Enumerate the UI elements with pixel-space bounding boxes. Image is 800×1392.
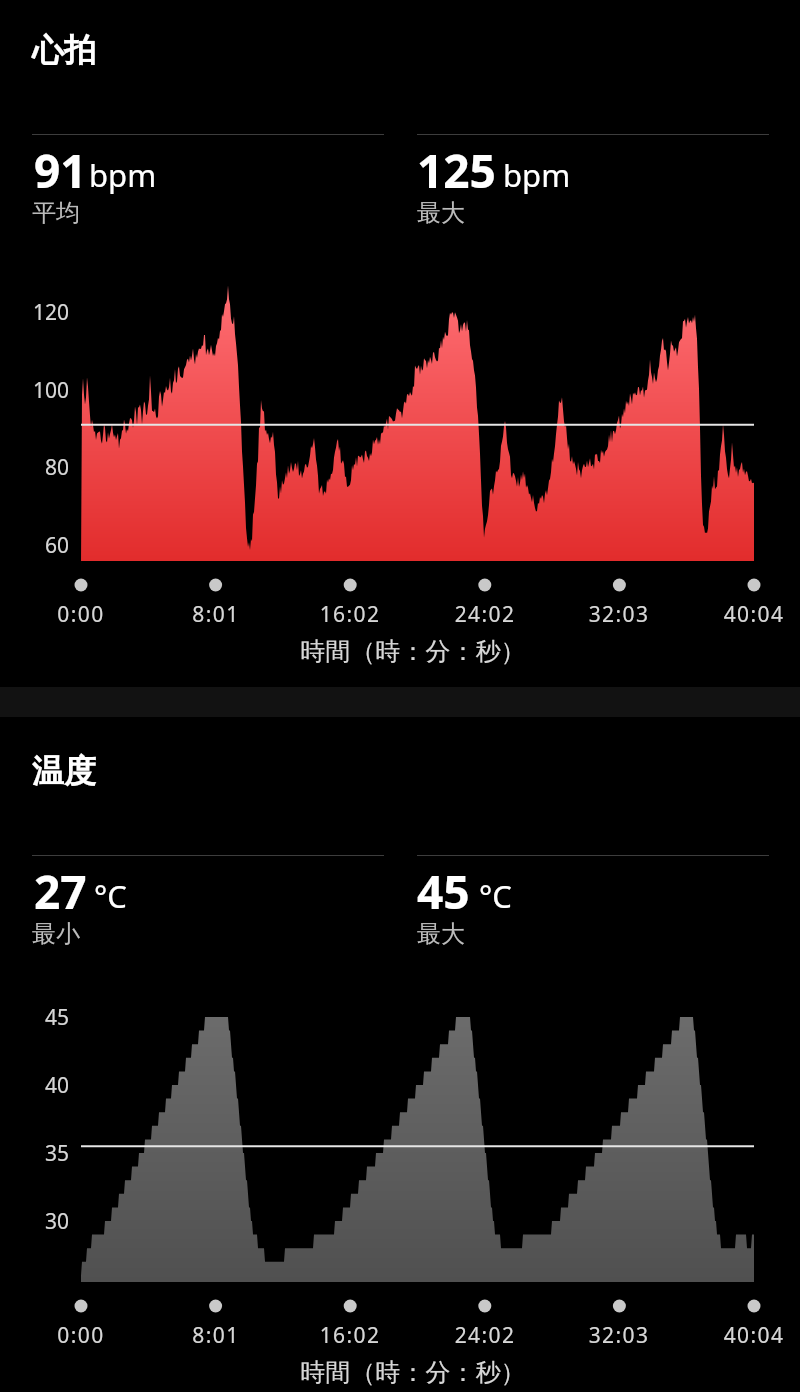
staticText: 24:02: [425, 1321, 545, 1350]
button[interactable]: 91: [32, 134, 384, 229]
staticText: 16:02: [290, 1321, 410, 1350]
staticText: 時間（時：分：秒）: [13, 1357, 800, 1388]
button[interactable]: 125: [417, 134, 769, 229]
staticText: 40:04: [694, 1321, 800, 1350]
button[interactable]: 温度グラフ: [81, 1013, 754, 1282]
staticText: 最大: [417, 919, 465, 949]
staticText: 32:03: [559, 1321, 679, 1350]
staticText: 27: [34, 860, 87, 923]
staticText: 24:02: [425, 600, 545, 629]
staticText: °C: [94, 875, 127, 917]
staticText: 最小: [32, 919, 80, 949]
staticText: 35: [2, 1139, 69, 1168]
staticText: 100: [2, 376, 69, 405]
staticText: 40: [2, 1071, 69, 1100]
button[interactable]: 心拍グラフ: [81, 292, 754, 561]
staticText: 40:04: [694, 600, 800, 629]
staticText: 8:01: [156, 600, 276, 629]
staticText: 16:02: [290, 600, 410, 629]
button[interactable]: 45: [417, 855, 769, 950]
staticText: 60: [2, 531, 69, 560]
staticText: 30: [2, 1207, 69, 1236]
staticText: 温度: [32, 751, 96, 791]
staticText: 91: [34, 139, 87, 202]
staticText: 45: [2, 1003, 69, 1032]
staticText: 32:03: [559, 600, 679, 629]
staticText: 時間（時：分：秒）: [13, 636, 800, 667]
staticText: 0:00: [21, 1321, 141, 1350]
staticText: bpm: [89, 154, 157, 196]
staticText: 最大: [417, 198, 465, 228]
staticText: °C: [479, 875, 512, 917]
staticText: 心拍: [32, 30, 96, 70]
button[interactable]: 心拍: [28, 22, 112, 78]
staticText: 0:00: [21, 600, 141, 629]
staticText: bpm: [503, 154, 571, 196]
staticText: 8:01: [156, 1321, 276, 1350]
button[interactable]: 温度: [28, 743, 112, 799]
staticText: 45: [417, 860, 470, 923]
button[interactable]: 27: [32, 855, 384, 950]
staticText: 80: [2, 453, 69, 482]
staticText: 120: [2, 298, 69, 327]
staticText: 125: [417, 139, 496, 202]
staticText: 平均: [32, 198, 80, 228]
